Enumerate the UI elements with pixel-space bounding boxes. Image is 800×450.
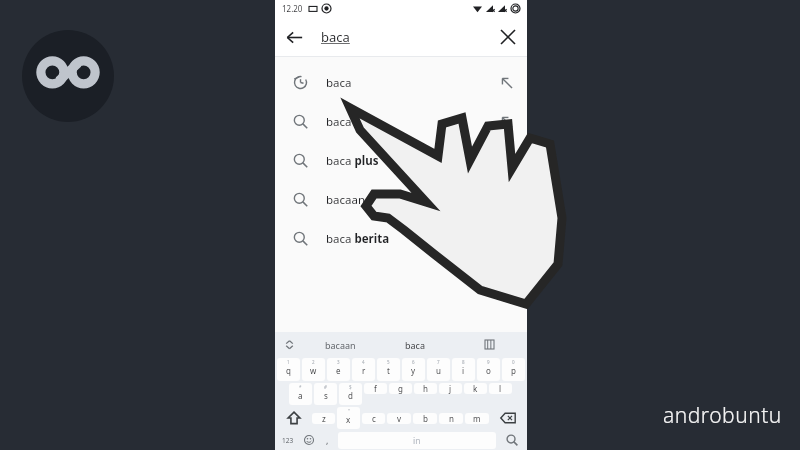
- staticText: 7: [437, 359, 440, 365]
- staticText: 1: [287, 359, 290, 365]
- staticText: g: [398, 383, 403, 394]
- staticText: p: [511, 365, 516, 376]
- staticText: 8: [462, 359, 465, 365]
- button[interactable]: Back: [275, 18, 313, 56]
- staticText: u: [436, 365, 441, 376]
- button[interactable]: 0: [502, 358, 525, 381]
- button[interactable]: j: [439, 383, 462, 394]
- staticText: 3: [337, 359, 340, 365]
- button[interactable]: 3: [327, 358, 350, 381]
- staticText: ,: [326, 434, 329, 446]
- button[interactable]: *: [289, 383, 312, 405]
- button[interactable]: 4: [352, 358, 375, 381]
- button[interactable]: Insert suggestion: [491, 145, 523, 177]
- staticText: ": [348, 408, 350, 414]
- staticText: k: [473, 383, 478, 394]
- staticText: c: [372, 413, 376, 424]
- staticText: bacaan: [325, 339, 356, 351]
- button[interactable]: l: [489, 383, 512, 394]
- staticText: e: [336, 365, 341, 376]
- staticText: baca plus: [326, 153, 379, 169]
- staticText: *: [299, 384, 302, 390]
- staticText: d: [348, 390, 353, 401]
- staticText: 123: [282, 436, 294, 445]
- button[interactable]: 7: [427, 358, 450, 381]
- staticText: o: [486, 365, 491, 376]
- staticText: h: [423, 383, 428, 394]
- staticText: r: [362, 365, 366, 376]
- staticText: baca berita: [326, 231, 390, 247]
- staticText: 5: [387, 359, 390, 365]
- button[interactable]: Clipboard: [452, 340, 527, 349]
- staticText: 6: [412, 359, 415, 365]
- button[interactable]: ": [337, 407, 360, 429]
- staticText: #: [324, 384, 327, 390]
- button[interactable]: 8: [452, 358, 475, 381]
- staticText: bacaan sho: [326, 192, 389, 208]
- button[interactable]: Shift: [276, 406, 311, 430]
- button[interactable]: f: [364, 383, 387, 394]
- button[interactable]: baca berita: [275, 219, 527, 258]
- staticText: s: [324, 390, 328, 401]
- button[interactable]: Search: [499, 430, 525, 450]
- staticText: b: [423, 413, 428, 424]
- staticText: q: [286, 365, 291, 376]
- button[interactable]: Expand suggestions: [275, 332, 303, 357]
- button[interactable]: m: [465, 413, 489, 424]
- staticText: 2: [312, 359, 315, 365]
- staticText: v: [397, 413, 402, 424]
- staticText: i: [462, 365, 465, 376]
- staticText: y: [411, 365, 416, 376]
- staticText: $: [349, 384, 352, 390]
- button[interactable]: in: [338, 432, 496, 449]
- staticText: m: [473, 413, 481, 424]
- staticText: l: [499, 383, 502, 394]
- staticText: baca: [405, 339, 425, 351]
- button[interactable]: c: [362, 413, 385, 424]
- button[interactable]: 123: [277, 430, 299, 450]
- staticText: 12.20: [282, 3, 303, 14]
- staticText: in: [413, 435, 421, 447]
- button[interactable]: baca: [275, 63, 527, 102]
- button[interactable]: Emoji: [299, 430, 319, 450]
- staticText: f: [374, 383, 377, 394]
- button[interactable]: baca: [321, 28, 489, 46]
- staticText: z: [322, 413, 326, 424]
- button[interactable]: b: [413, 413, 437, 424]
- button[interactable]: n: [439, 413, 463, 424]
- button[interactable]: Backspace: [490, 406, 526, 430]
- button[interactable]: g: [389, 383, 412, 394]
- staticText: baca: [326, 75, 352, 91]
- staticText: w: [310, 365, 317, 376]
- button[interactable]: ,: [319, 430, 335, 450]
- button[interactable]: k: [464, 383, 487, 394]
- button[interactable]: bacaan sho: [275, 180, 527, 219]
- button[interactable]: $: [339, 383, 362, 405]
- button[interactable]: 2: [302, 358, 325, 381]
- staticText: androbuntu: [663, 401, 782, 430]
- staticText: j: [449, 383, 452, 394]
- staticText: baca: [326, 114, 352, 130]
- button[interactable]: baca: [275, 102, 527, 141]
- button[interactable]: h: [414, 383, 437, 394]
- button[interactable]: 9: [477, 358, 500, 381]
- button[interactable]: Insert suggestion: [491, 106, 523, 138]
- button[interactable]: z: [312, 413, 335, 424]
- button[interactable]: v: [387, 413, 411, 424]
- button[interactable]: Insert suggestion: [491, 67, 523, 99]
- button[interactable]: baca: [377, 339, 452, 351]
- staticText: 0: [512, 359, 515, 365]
- staticText: baca: [321, 28, 350, 46]
- button[interactable]: 6: [402, 358, 425, 381]
- button[interactable]: 5: [377, 358, 400, 381]
- button[interactable]: Clear: [489, 18, 527, 56]
- staticText: x: [346, 414, 351, 425]
- button[interactable]: baca plus: [275, 141, 527, 180]
- button[interactable]: #: [314, 383, 337, 405]
- staticText: 9: [487, 359, 490, 365]
- staticText: n: [449, 413, 454, 424]
- button[interactable]: bacaan: [303, 339, 377, 351]
- button[interactable]: 1: [277, 358, 300, 381]
